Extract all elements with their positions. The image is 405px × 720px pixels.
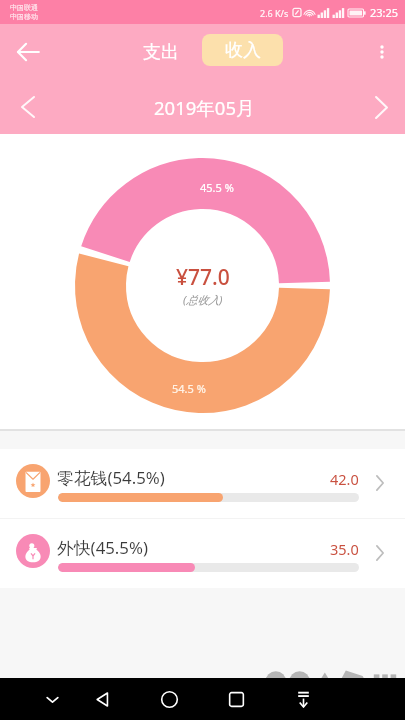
- staticText: 2019年05月: [154, 95, 255, 120]
- button[interactable]: More options: [364, 34, 400, 70]
- button[interactable]: 外快(45.5%): [0, 519, 405, 588]
- other: Open category: [366, 471, 393, 495]
- staticText: ¥77.0: [176, 263, 230, 292]
- button[interactable]: Back: [80, 678, 124, 720]
- staticText: 2.6 K/s: [260, 7, 289, 19]
- staticText: 收入: [225, 39, 261, 62]
- button[interactable]: Download: [281, 678, 325, 720]
- button[interactable]: Hide keyboard: [30, 678, 74, 720]
- staticText: 23:25: [370, 5, 399, 20]
- staticText: 支出: [143, 41, 179, 64]
- button[interactable]: Recent apps: [214, 678, 258, 720]
- staticText: (总收入): [183, 292, 223, 307]
- button[interactable]: Back: [6, 30, 50, 74]
- staticText: 35.0: [330, 539, 359, 559]
- staticText: 中国联通: [10, 3, 38, 12]
- other: Open category: [366, 541, 393, 565]
- button[interactable]: Previous month: [8, 87, 48, 127]
- staticText: 外快(45.5%): [57, 536, 148, 559]
- staticText: 54.5 %: [172, 381, 206, 396]
- staticText: 中国移动: [10, 12, 38, 21]
- staticText: 45.5 %: [200, 180, 234, 195]
- staticText: 零花钱(54.5%): [57, 466, 165, 489]
- button[interactable]: Home: [147, 678, 191, 720]
- staticText: 42.0: [330, 469, 359, 489]
- button[interactable]: 支出: [133, 32, 189, 72]
- button[interactable]: 零花钱(54.5%): [0, 449, 405, 518]
- button[interactable]: 收入: [202, 34, 283, 66]
- button[interactable]: Next month: [361, 87, 401, 127]
